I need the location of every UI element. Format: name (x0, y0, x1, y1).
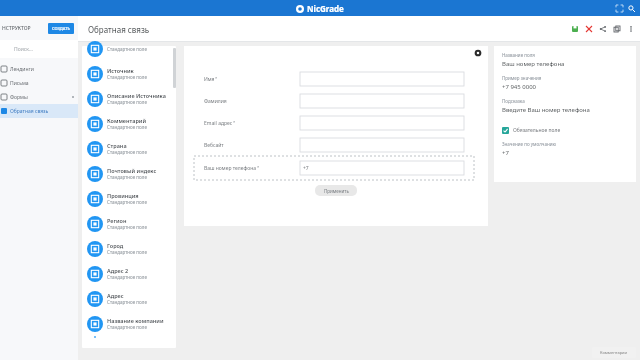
button[interactable]: Письма (0, 76, 78, 90)
staticText: Стандартное поле (107, 274, 147, 280)
staticText: Пример значения (502, 75, 542, 81)
staticText: NicGrade (307, 3, 344, 14)
button[interactable]: Обратная связь (0, 104, 78, 118)
button[interactable]: Дата рождения (82, 336, 176, 338)
button[interactable]: Регион (82, 211, 176, 236)
button[interactable]: Share (596, 22, 610, 36)
staticText: Название компании (107, 317, 164, 324)
staticText: Комментарий (107, 117, 147, 124)
button[interactable] (300, 72, 464, 86)
button[interactable]: Close (582, 22, 596, 36)
button[interactable]: Search (625, 2, 637, 14)
staticText: Обязательное поле (513, 127, 561, 134)
button[interactable]: Применить (315, 185, 357, 196)
button[interactable]: Описание Источника (82, 86, 176, 111)
button[interactable]: Комментарий (82, 111, 176, 136)
button[interactable]: Обязательное поле (502, 124, 628, 136)
staticText: Источник (107, 67, 134, 74)
button[interactable]: Fullscreen (613, 2, 625, 14)
staticText: * (233, 120, 236, 125)
staticText: Ваш номер телефона (502, 60, 565, 68)
staticText: Название поля (502, 52, 535, 58)
button[interactable]: Страна (82, 136, 176, 161)
staticText: Стандартное поле (107, 74, 147, 80)
button[interactable]: Ваш номер телефона (194, 156, 474, 180)
staticText: Стандартное поле (107, 46, 147, 52)
button[interactable]: Почтовый индекс (82, 161, 176, 186)
staticText: Обратная связь (10, 108, 49, 115)
staticText: Ваш номер телефона (204, 165, 257, 172)
staticText: Вебсайт (204, 142, 224, 149)
staticText: Стандартное поле (107, 149, 147, 155)
button[interactable]: Источник (82, 61, 176, 86)
button[interactable]: Формы (0, 90, 78, 104)
staticText: Страна (107, 142, 127, 149)
button[interactable]: Значение по умолчанию (502, 141, 628, 164)
button[interactable]: Название поля (502, 52, 628, 75)
button[interactable] (300, 116, 464, 130)
button[interactable]: Провинция (82, 186, 176, 211)
button[interactable]: Лендинги (0, 62, 78, 76)
button[interactable]: Комментарии (592, 347, 636, 358)
button[interactable]: More (624, 22, 638, 36)
staticText: Имя (204, 76, 215, 83)
staticText: Адрес 2 (107, 267, 129, 274)
staticText: Стандартное поле (107, 324, 147, 330)
button[interactable]: Стандартное поле (82, 36, 176, 61)
staticText: Фамилия (204, 98, 227, 105)
button[interactable]: СОЗДАТЬ (48, 23, 74, 34)
button[interactable]: Save (568, 22, 582, 36)
staticText: Стандартное поле (107, 224, 147, 230)
button[interactable]: Подсказка (502, 98, 628, 121)
staticText: Подсказка (502, 98, 525, 104)
button[interactable]: Адрес 2 (82, 261, 176, 286)
staticText: СОЗДАТЬ (52, 26, 70, 31)
staticText: Почтовый индекс (107, 167, 157, 174)
staticText: Email адрес (204, 120, 233, 127)
button[interactable]: Город (82, 236, 176, 261)
button[interactable] (300, 138, 464, 152)
staticText: Комментарии (600, 350, 628, 355)
button[interactable]: Copy (610, 22, 624, 36)
staticText: Стандартное поле (107, 124, 147, 130)
staticText: +7 945 0000 (502, 83, 537, 91)
button[interactable]: Адрес (82, 286, 176, 311)
staticText: Адрес (107, 292, 124, 299)
staticText: Поиск... (14, 46, 33, 53)
staticText: НСТРУКТОР (2, 25, 31, 32)
staticText: Регион (107, 217, 127, 224)
staticText: Стандартное поле (107, 199, 147, 205)
staticText: Письма (10, 80, 29, 87)
staticText: Лендинги (10, 66, 34, 73)
staticText: * (215, 76, 218, 81)
staticText: Стандартное поле (107, 299, 147, 305)
button[interactable] (300, 94, 464, 108)
staticText: Описание Источника (107, 92, 166, 99)
staticText: +7 (502, 149, 509, 157)
staticText: Город (107, 242, 124, 249)
staticText: * (257, 165, 260, 170)
button[interactable]: Settings (473, 48, 482, 57)
button[interactable]: Поиск... (0, 40, 78, 58)
staticText: Введите Ваш номер телефона (502, 106, 590, 114)
staticText: Стандартное поле (107, 174, 147, 180)
button[interactable]: Пример значения (502, 75, 628, 98)
staticText: Стандартное поле (107, 249, 147, 255)
staticText: Значение по умолчанию (502, 141, 557, 147)
staticText: +7 (303, 165, 309, 172)
staticText: Применить (324, 188, 349, 194)
staticText: Провинция (107, 192, 139, 199)
staticText: Формы (10, 94, 28, 101)
staticText: Обратная связь (88, 24, 150, 35)
button[interactable]: Название компании (82, 311, 176, 336)
staticText: Стандартное поле (107, 99, 147, 105)
